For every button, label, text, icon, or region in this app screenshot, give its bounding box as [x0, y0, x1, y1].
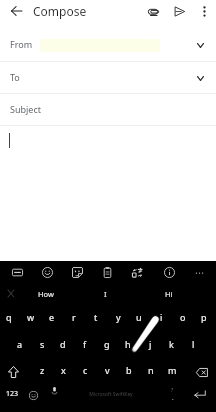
staticText: b [126, 364, 132, 376]
staticText: 123 [6, 389, 19, 399]
button[interactable]: How [20, 284, 72, 304]
button[interactable]: ? [163, 383, 181, 405]
staticText: Subject [10, 103, 42, 115]
staticText: f [83, 338, 87, 350]
button[interactable]: To [0, 62, 216, 93]
staticText: e [49, 311, 55, 323]
button[interactable]: More [188, 261, 210, 283]
staticText: x [61, 364, 66, 376]
button[interactable]: Dismiss suggestions [1, 284, 20, 303]
staticText: l [192, 338, 195, 350]
staticText: . [172, 394, 174, 402]
button[interactable]: Expand [191, 36, 209, 54]
button[interactable]: k [160, 333, 182, 355]
staticText: v [105, 364, 110, 376]
button[interactable]: p [193, 306, 215, 328]
button[interactable]: Stickers [66, 261, 88, 283]
button[interactable]: y [107, 306, 129, 328]
button[interactable]: Hi [143, 284, 195, 304]
button[interactable]: h [117, 333, 139, 355]
staticText: r [72, 311, 76, 323]
button[interactable]: b [118, 359, 140, 381]
staticText: To [10, 71, 20, 83]
button[interactable]: s [31, 333, 53, 355]
staticText: Microsoft SwiftKey [89, 391, 133, 398]
button[interactable]: f [74, 333, 96, 355]
button[interactable]: Shift [2, 361, 24, 383]
staticText: u [136, 311, 142, 323]
button[interactable]: w [20, 306, 42, 328]
staticText: j [149, 338, 152, 350]
staticText: y [116, 311, 121, 323]
button[interactable]: v [96, 359, 118, 381]
button[interactable]: Expand [191, 69, 209, 87]
button[interactable]: g [96, 333, 118, 355]
staticText: g [104, 338, 110, 350]
button[interactable]: q [0, 306, 20, 328]
staticText: p [201, 311, 207, 323]
staticText: w [27, 311, 35, 323]
button[interactable]: e [41, 306, 63, 328]
button[interactable]: Emoji [36, 261, 58, 283]
staticText: How [38, 289, 54, 299]
button[interactable]: I [79, 284, 131, 304]
button[interactable]: Send [168, 0, 190, 22]
staticText: m [168, 364, 177, 376]
button[interactable]: Clipboard [96, 261, 118, 283]
staticText: z [40, 364, 45, 376]
staticText: ? [171, 387, 174, 394]
button[interactable]: Translate [126, 261, 148, 283]
button[interactable]: r [63, 306, 85, 328]
button[interactable]: Back [5, 0, 27, 22]
button[interactable]: Emoji keyboard [22, 384, 44, 406]
button[interactable]: Microsoft SwiftKey [66, 385, 156, 403]
button[interactable]: Enter [189, 383, 211, 405]
button[interactable]: More options [193, 0, 215, 22]
button[interactable]: Voice input [43, 379, 65, 401]
button[interactable]: Info [158, 261, 180, 283]
staticText: k [169, 338, 174, 350]
button[interactable]: a [9, 333, 31, 355]
staticText: s [40, 338, 45, 350]
button[interactable]: m [161, 359, 183, 381]
staticText: t [94, 311, 98, 323]
button[interactable]: o [172, 306, 194, 328]
button[interactable]: 123 [1, 383, 23, 405]
button[interactable]: c [74, 359, 96, 381]
staticText: n [148, 364, 154, 376]
button[interactable]: d [52, 333, 74, 355]
button[interactable]: i [150, 306, 172, 328]
button[interactable]: Attach file [142, 0, 164, 22]
button[interactable]: j [139, 333, 161, 355]
button[interactable]: u [128, 306, 150, 328]
staticText: i [160, 311, 163, 323]
staticText: q [6, 311, 12, 323]
button[interactable]: GIF [6, 261, 28, 283]
staticText: h [125, 338, 131, 350]
button[interactable]: t [85, 306, 107, 328]
staticText: Compose [33, 3, 87, 19]
button[interactable]: Subject [0, 94, 216, 125]
staticText: d [60, 338, 66, 350]
staticText: I [104, 289, 107, 299]
button[interactable]: From [0, 29, 216, 61]
staticText: a [17, 338, 23, 350]
staticText: Hi [165, 289, 173, 299]
button[interactable]: n [140, 359, 162, 381]
staticText: c [83, 364, 88, 376]
button[interactable]: z [31, 359, 53, 381]
staticText: o [180, 311, 186, 323]
button[interactable]: Backspace [191, 361, 213, 383]
button[interactable]: x [52, 359, 74, 381]
staticText: From [10, 38, 33, 50]
button[interactable]: l [182, 333, 204, 355]
